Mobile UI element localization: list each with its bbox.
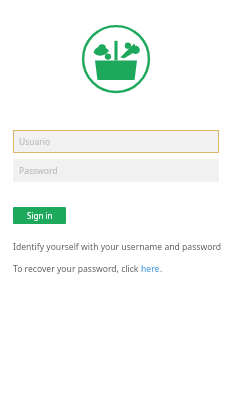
staticText: here: [141, 263, 160, 275]
staticText: Sign in: [27, 210, 53, 221]
staticText: To recover your password, click: [13, 263, 141, 275]
button[interactable]: Sign in: [13, 207, 66, 224]
staticText: Identify yourself with your username and…: [13, 241, 222, 253]
button[interactable]: here: [141, 263, 160, 275]
staticText: Password: [19, 165, 58, 177]
staticText: Usuario: [19, 136, 51, 148]
staticText: .: [160, 263, 163, 275]
button[interactable]: Usuario: [13, 130, 219, 153]
other: Grocery basket logo: [81, 24, 151, 94]
button[interactable]: Password: [13, 159, 219, 182]
